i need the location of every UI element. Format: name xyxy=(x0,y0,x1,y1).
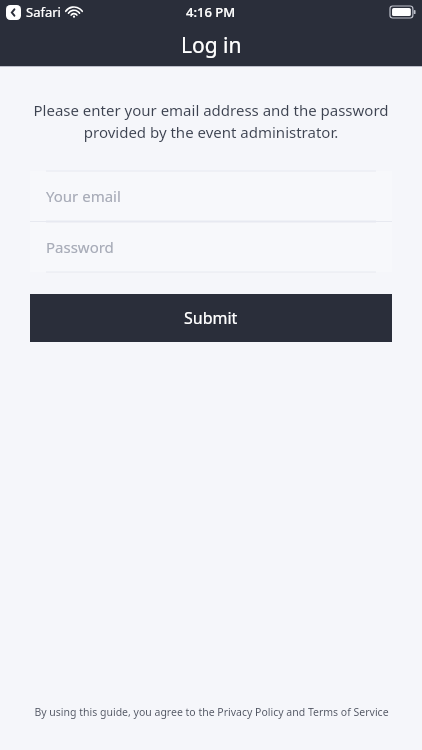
button[interactable]: By using this guide, you agree to the Pr… xyxy=(34,705,389,719)
staticText: Password xyxy=(46,237,114,257)
button[interactable]: Back to Safari xyxy=(6,3,81,21)
staticText: Submit xyxy=(184,307,238,329)
staticText: Log in xyxy=(181,31,242,60)
staticText: Safari xyxy=(26,3,61,21)
button[interactable]: Email input field xyxy=(30,171,392,221)
button[interactable]: Submit xyxy=(30,294,392,342)
button[interactable]: Password input field xyxy=(30,222,392,272)
staticText: Your email xyxy=(46,186,121,206)
staticText: 4:16 PM xyxy=(186,3,236,21)
staticText: Please enter your email address and the … xyxy=(24,100,398,143)
